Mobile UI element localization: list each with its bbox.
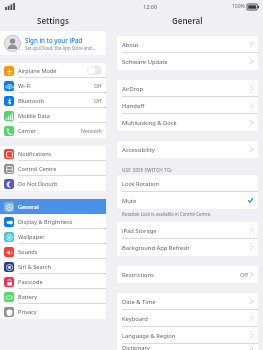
button[interactable]: Lock Rotation	[117, 175, 258, 192]
staticText: Mobile Data	[18, 112, 102, 120]
staticText: General	[172, 15, 203, 26]
staticText: Siri & Search	[18, 263, 102, 271]
staticText: Rotation Lock is available in Control Ce…	[122, 211, 212, 217]
button[interactable]: Bluetooth	[0, 93, 106, 108]
staticText: Dictionary	[122, 344, 250, 350]
button[interactable]: Siri & Search	[0, 259, 106, 274]
button[interactable]: AirDrop	[117, 80, 258, 97]
button[interactable]: Control Centre	[0, 161, 106, 176]
button[interactable]: Handoff	[117, 97, 258, 114]
button[interactable]: Wi-Fi	[0, 78, 106, 93]
staticText: Background App Refresh	[122, 244, 250, 252]
staticText: Privacy	[18, 308, 102, 316]
button[interactable]: Restrictions	[117, 266, 258, 283]
staticText: Date & Time	[122, 298, 250, 306]
staticText: Restrictions	[122, 271, 240, 279]
staticText: Control Centre	[18, 165, 102, 173]
button[interactable]: Battery	[0, 289, 106, 304]
staticText: Network	[81, 127, 102, 134]
staticText: Bluetooth	[18, 97, 94, 105]
button[interactable]: Software Update	[117, 53, 258, 70]
button[interactable]: Sign in to your iPad	[0, 31, 106, 55]
staticText: Settings	[37, 15, 69, 26]
staticText: Off	[94, 97, 102, 104]
button[interactable]: Passcode	[0, 274, 106, 289]
staticText: Sounds	[18, 248, 102, 256]
staticText: General	[18, 203, 102, 211]
staticText: USE SIDE SWITCH TO:	[122, 167, 173, 173]
staticText: Lock Rotation	[122, 180, 253, 188]
button[interactable]: Airplane Mode	[0, 63, 106, 78]
staticText: Set up iCloud, the App Store and…	[25, 45, 96, 51]
button[interactable]: iPad Storage	[117, 222, 258, 239]
staticText: Wallpaper	[18, 233, 102, 241]
staticText: Off	[94, 82, 102, 89]
staticText: 100%	[232, 3, 245, 10]
button[interactable]: General	[0, 199, 106, 214]
button[interactable]: Mobile Data	[0, 108, 106, 123]
button[interactable]: Dictionary	[117, 344, 258, 350]
button[interactable]: Do Not Disturb	[0, 176, 106, 191]
staticText: Display & Brightness	[18, 218, 102, 226]
staticText: Carrier	[18, 127, 81, 135]
button[interactable]: Date & Time	[117, 293, 258, 310]
button[interactable]: Wallpaper	[0, 229, 106, 244]
staticText: Mute	[122, 197, 248, 205]
staticText: Notifications	[18, 150, 102, 158]
button[interactable]: About	[117, 36, 258, 53]
staticText: Accessibility	[122, 146, 250, 154]
staticText: Wi-Fi	[18, 82, 94, 90]
staticText: Software Update	[122, 58, 250, 66]
staticText: Keyboard	[122, 315, 250, 323]
staticText: iPad Storage	[122, 227, 250, 235]
button[interactable]: Privacy	[0, 304, 106, 319]
button[interactable]: Sounds	[0, 244, 106, 259]
staticText: Battery	[18, 293, 102, 301]
button[interactable]: Mute	[117, 192, 258, 209]
staticText: Handoff	[122, 102, 250, 110]
button[interactable]: Notifications	[0, 146, 106, 161]
staticText: AirDrop	[122, 85, 250, 93]
staticText: Passcode	[18, 278, 102, 286]
staticText: Sign in to your iPad	[25, 36, 83, 44]
staticText: Off	[240, 271, 248, 278]
staticText: 12:00	[143, 3, 158, 10]
staticText: About	[122, 41, 250, 49]
staticText: Language & Region	[122, 332, 250, 340]
staticText: Airplane Mode	[18, 67, 87, 75]
button[interactable]: Language & Region	[117, 327, 258, 344]
staticText: Do Not Disturb	[18, 180, 102, 188]
button[interactable]: Accessibility	[117, 141, 258, 158]
staticText: Multitasking & Dock	[122, 119, 250, 127]
button[interactable]: Background App Refresh	[117, 239, 258, 256]
button[interactable]: Carrier	[0, 123, 106, 138]
button[interactable]: Multitasking & Dock	[117, 114, 258, 131]
button[interactable]: Display & Brightness	[0, 214, 106, 229]
button[interactable]: Keyboard	[117, 310, 258, 327]
